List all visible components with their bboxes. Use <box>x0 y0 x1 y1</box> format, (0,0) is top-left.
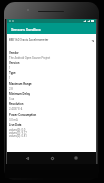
staticText: Power Consumption <box>9 113 37 117</box>
staticText: values[1]: 9.77 <box>9 131 27 134</box>
staticText: 2.8 <box>9 87 13 90</box>
staticText: Version <box>9 61 20 65</box>
staticText: Vendor <box>9 51 19 55</box>
button[interactable]: Home <box>47 153 57 163</box>
staticText: 3.0 mA <box>9 118 18 121</box>
button[interactable]: BMI160 3-axis Accelerometer <box>9 38 94 42</box>
staticText: Resolution <box>9 102 24 106</box>
button[interactable]: Sensors Sandbox <box>7 23 96 34</box>
staticText: The Android Open Source Project <box>9 56 51 59</box>
staticText: 5 us <box>9 97 15 100</box>
staticText: Type <box>9 71 16 75</box>
staticText: 1 <box>9 66 11 69</box>
button[interactable]: Back <box>22 153 32 163</box>
staticText: Maximum Range <box>9 82 32 86</box>
staticText: BMI160 3-axis Accelerometer <box>9 38 91 42</box>
staticText: 1 <box>9 76 11 79</box>
staticText: Live Data <box>9 123 22 127</box>
button[interactable]: Recent apps <box>71 153 81 163</box>
staticText: Minimum Delay <box>9 92 30 96</box>
staticText: Sensors Sandbox <box>11 27 41 31</box>
staticText: values[2]: 0.81 <box>9 134 27 137</box>
staticText: 2.4037 E-4 <box>9 107 23 110</box>
staticText: values[0]: 0.0 <box>9 128 26 131</box>
